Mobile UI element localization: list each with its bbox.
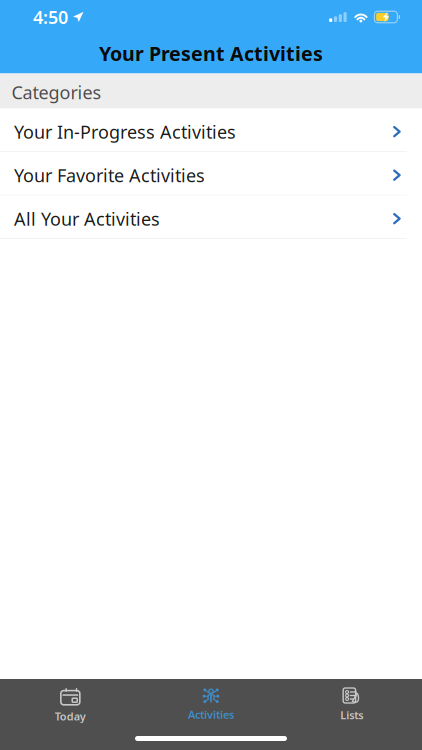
button[interactable]: Activities xyxy=(141,679,281,707)
button[interactable]: Your Favorite Activities xyxy=(0,152,422,195)
staticText: Activities xyxy=(188,707,234,722)
staticText: Lists xyxy=(340,708,363,722)
staticText: 4:50 xyxy=(33,5,68,29)
staticText: Categories xyxy=(11,80,101,104)
staticText: All Your Activities xyxy=(14,206,160,231)
staticText: Today xyxy=(55,709,86,724)
staticText: Your Present Activities xyxy=(99,40,323,67)
button[interactable]: Lists xyxy=(281,679,422,707)
staticText: Your Favorite Activities xyxy=(14,163,205,187)
button[interactable]: Your In-Progress Activities xyxy=(0,108,422,152)
staticText: Your In-Progress Activities xyxy=(14,119,236,144)
button[interactable]: All Your Activities xyxy=(0,195,422,239)
button[interactable]: Today xyxy=(0,679,141,707)
